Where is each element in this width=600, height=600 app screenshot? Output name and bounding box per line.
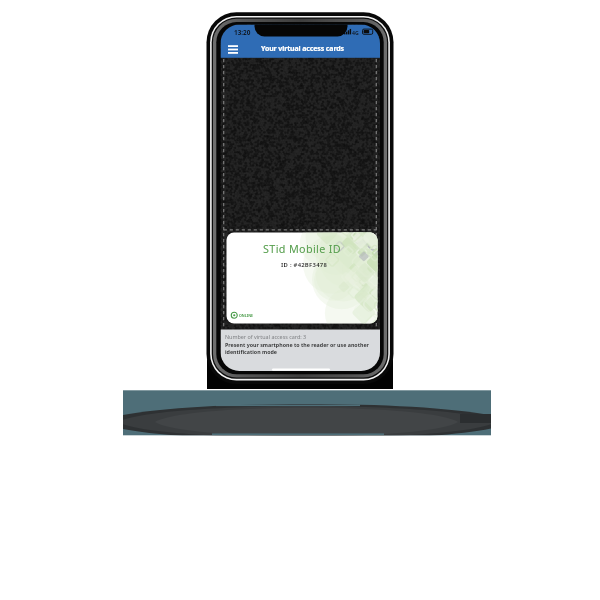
staticText: ONLINE <box>239 313 254 318</box>
button[interactable]: Open navigation menu <box>227 43 239 55</box>
staticText: STid Mobile ID <box>263 241 342 256</box>
staticText: Number of virtual access card: 3 <box>225 333 307 340</box>
staticText: 13:20 <box>234 28 251 37</box>
staticText: Present your smartphone to the reader or… <box>225 341 395 356</box>
staticText: 4G <box>352 29 359 36</box>
staticText: Your virtual access cards <box>261 44 344 54</box>
staticText: ID : #42BF3478 <box>281 261 327 269</box>
